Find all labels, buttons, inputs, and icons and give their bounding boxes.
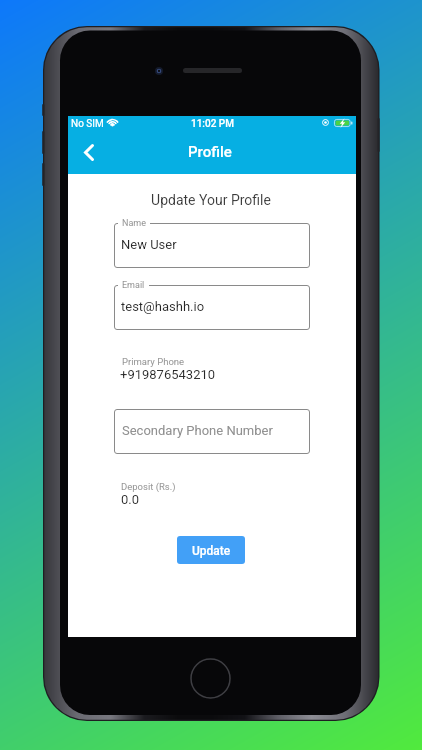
staticText: New User	[121, 237, 177, 252]
staticText: Name	[122, 218, 146, 229]
staticText: Primary Phone	[122, 356, 185, 367]
staticText: No SIM	[71, 118, 104, 130]
staticText: Email	[122, 280, 145, 291]
button[interactable]	[114, 285, 310, 330]
staticText: Secondary Phone Number	[122, 423, 273, 438]
staticText: +919876543210	[120, 367, 216, 382]
staticText: Deposit (Rs.)	[121, 481, 176, 492]
button[interactable]	[114, 223, 310, 268]
staticText: Update Your Profile	[67, 192, 355, 208]
staticText: 11:02 PM	[191, 118, 234, 130]
staticText: Update	[192, 544, 231, 558]
button[interactable]	[114, 409, 310, 454]
staticText: Profile	[188, 143, 232, 161]
button[interactable]: Back	[73, 135, 105, 169]
staticText: test@hashh.io	[121, 299, 205, 314]
staticText: 0.0	[121, 492, 140, 507]
button[interactable]: Update	[177, 536, 245, 564]
